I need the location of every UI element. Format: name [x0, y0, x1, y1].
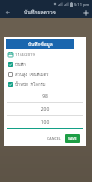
staticText: 200 [7, 106, 83, 113]
staticText: 11/4/2019 [15, 52, 35, 58]
button[interactable]: น้ำหนัก กิโลกรัม [8, 79, 86, 89]
staticText: CANCEL [47, 136, 61, 141]
staticText: SAVE [68, 136, 77, 141]
button[interactable]: ส่วนสูง เซนติเมตร [8, 69, 86, 79]
button[interactable]: บันทึก [8, 59, 86, 69]
button[interactable]: Back [3, 8, 11, 16]
staticText: 5:11 pm [74, 2, 90, 7]
button[interactable]: Add [81, 8, 90, 17]
staticText: 98 [7, 93, 83, 100]
staticText: บันทึก [15, 61, 26, 68]
staticText: 100 [7, 119, 83, 126]
button[interactable]: CANCEL [45, 134, 63, 143]
button[interactable]: SAVE [65, 134, 80, 143]
staticText: ส่วนสูง เซนติเมตร [15, 71, 49, 78]
button[interactable]: 11/4/2019 [8, 50, 86, 59]
staticText: บันทึกข้อมูล [28, 40, 53, 48]
staticText: น้ำหนัก กิโลกรัม [15, 81, 46, 88]
staticText: บันทึกผลตรวจ [24, 8, 56, 16]
